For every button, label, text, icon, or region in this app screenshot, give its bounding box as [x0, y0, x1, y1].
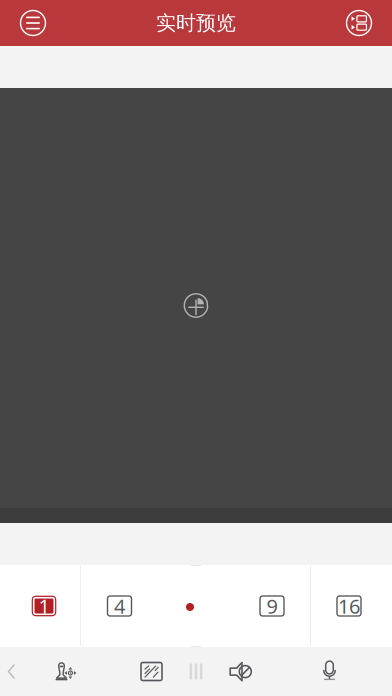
- button[interactable]: Talk: [303, 647, 355, 696]
- button[interactable]: 1 channel: [4, 565, 84, 647]
- staticText: 实时预览: [156, 11, 236, 35]
- staticText: 9: [266, 593, 277, 619]
- button[interactable]: 16 channels: [310, 565, 388, 647]
- button[interactable]: Previous page: [0, 647, 29, 696]
- button[interactable]: PTZ control: [38, 647, 90, 696]
- staticText: 1: [38, 593, 49, 619]
- button[interactable]: Mute audio: [215, 647, 267, 696]
- button[interactable]: 4 channels: [81, 565, 157, 647]
- staticText: 16: [338, 593, 360, 619]
- staticText: 4: [114, 593, 125, 619]
- button[interactable]: 9 channels: [234, 565, 310, 647]
- button[interactable]: Menu: [17, 7, 49, 39]
- button[interactable]: Record: [176, 647, 216, 696]
- button[interactable]: Device list: [343, 7, 375, 39]
- button[interactable]: Snapshot: [125, 647, 177, 696]
